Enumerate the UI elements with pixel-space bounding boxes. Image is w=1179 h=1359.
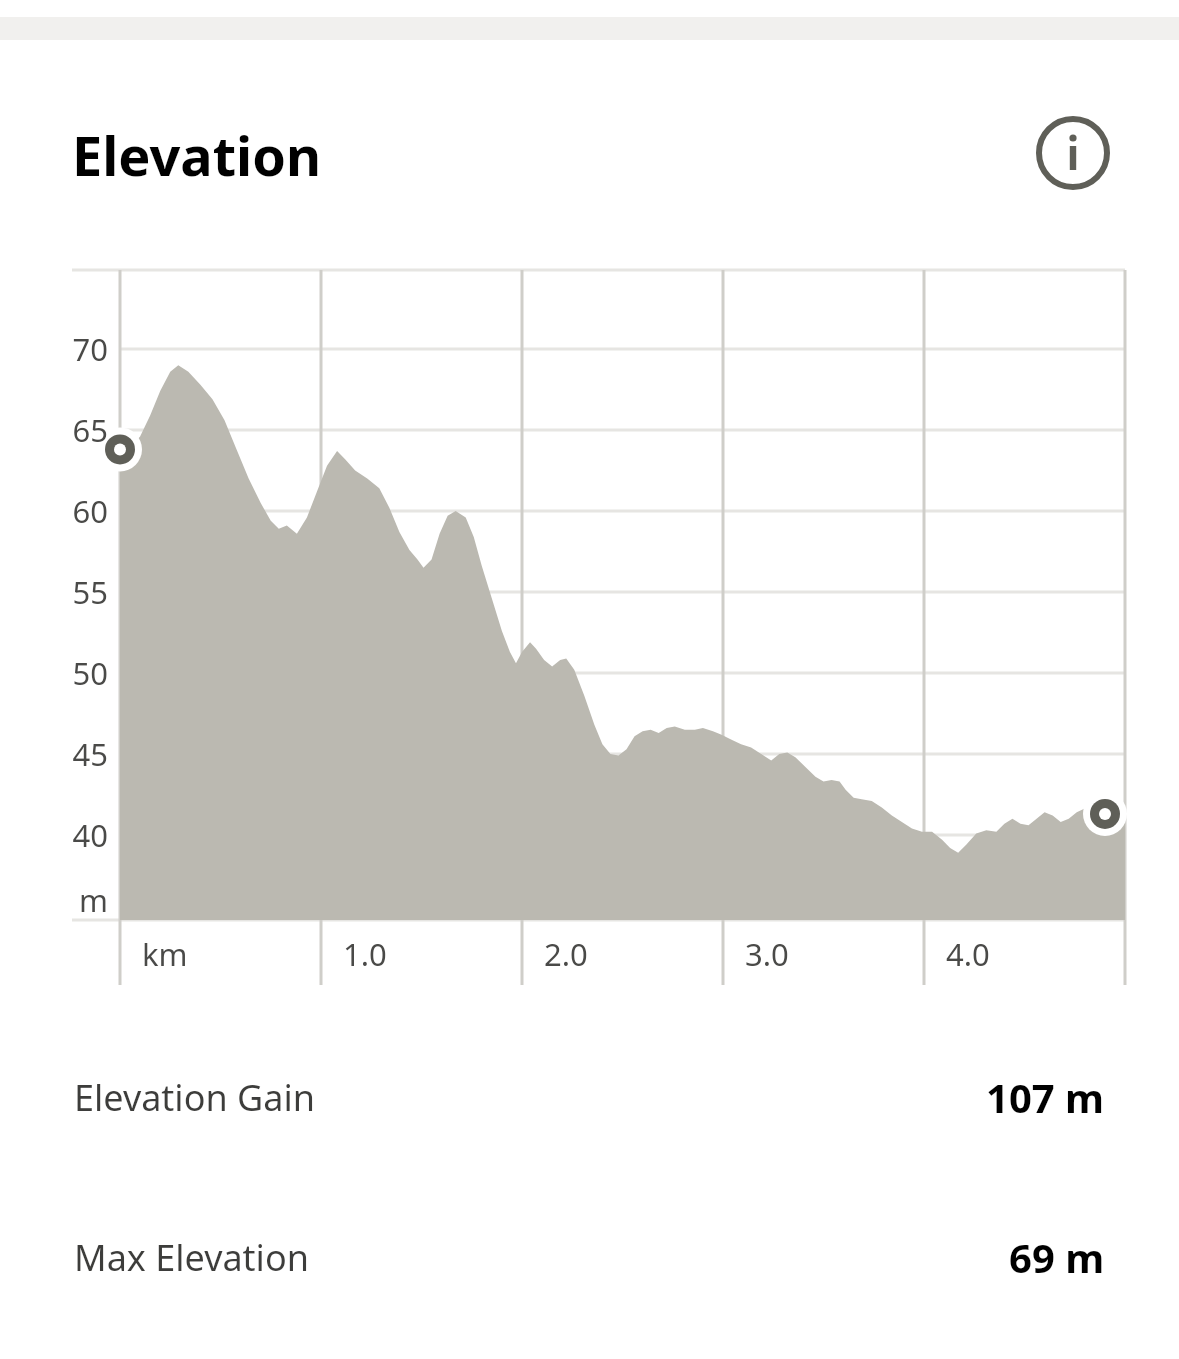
staticText: m (48, 879, 108, 921)
staticText: 65 (48, 409, 108, 451)
staticText: km (142, 933, 188, 975)
staticText: Elevation (72, 118, 322, 192)
staticText: Max Elevation (74, 1233, 309, 1282)
staticText: 3.0 (745, 933, 789, 975)
staticText: 70 (48, 328, 108, 370)
staticText: 2.0 (544, 933, 588, 975)
button[interactable]: Elevation Gain (74, 1062, 1105, 1132)
staticText: 1.0 (343, 933, 387, 975)
staticText: 45 (48, 733, 108, 775)
staticText: Elevation Gain (74, 1073, 315, 1122)
staticText: 4.0 (946, 933, 990, 975)
staticText: 69 m (1009, 1230, 1105, 1284)
staticText: 40 (48, 814, 108, 856)
staticText: 55 (48, 571, 108, 613)
button[interactable]: Max Elevation (74, 1222, 1105, 1292)
staticText: 107 m (986, 1070, 1105, 1124)
staticText: 50 (48, 652, 108, 694)
staticText: 60 (48, 490, 108, 532)
button[interactable]: Information about elevation (1035, 115, 1111, 191)
